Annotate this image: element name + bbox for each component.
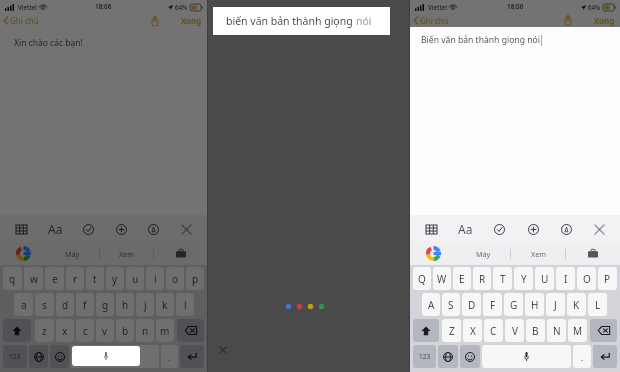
button[interactable]: Aa	[454, 218, 476, 240]
button[interactable]: V	[505, 319, 524, 342]
button[interactable]: Bảng	[421, 219, 441, 239]
button[interactable]: j	[136, 293, 154, 316]
staticText: Y	[521, 272, 527, 286]
button[interactable]: Thêm	[111, 219, 131, 239]
button[interactable]: 123	[413, 345, 436, 368]
button[interactable]: s	[35, 293, 54, 316]
button[interactable]: E	[453, 267, 471, 290]
button[interactable]: m	[156, 319, 174, 342]
button[interactable]: Dấu cách	[482, 345, 571, 368]
button[interactable]: a	[14, 293, 33, 316]
button[interactable]: U	[535, 267, 554, 290]
button[interactable]: .	[573, 345, 591, 368]
button[interactable]: K	[567, 293, 586, 316]
button[interactable]: C	[484, 319, 503, 342]
button[interactable]: biến văn bản thành giọng	[213, 7, 390, 35]
button[interactable]: z	[35, 319, 54, 342]
button[interactable]: Đóng bàn phím	[589, 219, 609, 239]
button[interactable]: T	[493, 267, 512, 290]
button[interactable]: Đóng bàn phím	[176, 219, 196, 239]
button[interactable]: G	[504, 293, 523, 316]
button[interactable]: Xong	[592, 15, 617, 26]
button[interactable]: Máy	[46, 242, 99, 265]
button[interactable]: O	[577, 267, 596, 290]
button[interactable]: F	[483, 293, 502, 316]
button[interactable]: L	[588, 293, 607, 316]
button[interactable]: M	[568, 319, 587, 342]
button[interactable]: l	[176, 293, 194, 316]
button[interactable]: Xem	[511, 242, 565, 265]
button[interactable]: Xong	[179, 15, 204, 26]
button[interactable]: Cặp	[154, 242, 207, 265]
button[interactable]: Đánh dấu	[143, 219, 163, 239]
button[interactable]: Ghi chú	[413, 15, 449, 26]
button[interactable]: N	[547, 319, 566, 342]
button[interactable]: Shift	[3, 319, 31, 342]
staticText: i	[154, 272, 157, 286]
button[interactable]: Xuống dòng	[593, 345, 617, 368]
button[interactable]: h	[116, 293, 134, 316]
button[interactable]: x	[56, 319, 74, 342]
button[interactable]: e	[45, 267, 64, 290]
button[interactable]: Shift	[413, 319, 439, 342]
button[interactable]: Máy	[456, 242, 510, 265]
button[interactable]: S	[442, 293, 460, 316]
button[interactable]: Google	[0, 242, 46, 265]
button[interactable]: D	[462, 293, 481, 316]
button[interactable]: i	[146, 267, 164, 290]
button[interactable]: u	[126, 267, 144, 290]
button[interactable]: Xem	[100, 242, 153, 265]
button[interactable]: Z	[442, 319, 461, 342]
button[interactable]: Dấu cách	[71, 345, 159, 368]
button[interactable]: I	[556, 267, 575, 290]
button[interactable]: Xuống dòng	[180, 345, 204, 368]
button[interactable]: Biểu tượng cảm xúc	[460, 345, 480, 368]
button[interactable]: Q	[413, 267, 431, 290]
button[interactable]: Thêm	[523, 219, 543, 239]
button[interactable]: Ghi chú	[3, 15, 39, 26]
button[interactable]: Danh sách kiểm	[489, 219, 509, 239]
button[interactable]: Google	[410, 242, 456, 265]
staticText: t	[93, 272, 97, 286]
button[interactable]: Aa	[44, 218, 66, 240]
button[interactable]: Y	[514, 267, 533, 290]
button[interactable]: p	[186, 267, 204, 290]
button[interactable]: Danh sách kiểm	[78, 219, 98, 239]
button[interactable]: H	[525, 293, 544, 316]
button[interactable]: r	[66, 267, 84, 290]
button[interactable]: k	[156, 293, 174, 316]
button[interactable]: 123	[3, 345, 27, 368]
button[interactable]: Đánh dấu	[556, 219, 576, 239]
button[interactable]: X	[463, 319, 482, 342]
button[interactable]: A	[422, 293, 440, 316]
button[interactable]: n	[136, 319, 154, 342]
button[interactable]: Xóa	[590, 319, 617, 342]
button[interactable]: o	[166, 267, 184, 290]
button[interactable]: Đổi bàn phím	[29, 345, 48, 368]
button[interactable]: v	[96, 319, 114, 342]
button[interactable]: Bảng	[11, 219, 31, 239]
button[interactable]: Chia sẻ	[147, 13, 163, 28]
button[interactable]: f	[76, 293, 94, 316]
button[interactable]: R	[473, 267, 491, 290]
button[interactable]: y	[106, 267, 124, 290]
button[interactable]: g	[96, 293, 114, 316]
button[interactable]: .	[161, 345, 178, 368]
button[interactable]: q	[3, 267, 22, 290]
button[interactable]: W	[433, 267, 451, 290]
button[interactable]: Đổi bàn phím	[438, 345, 458, 368]
button[interactable]: J	[546, 293, 565, 316]
button[interactable]: P	[598, 267, 617, 290]
button[interactable]: d	[56, 293, 74, 316]
button[interactable]: Cặp	[566, 242, 620, 265]
button[interactable]: t	[86, 267, 104, 290]
button[interactable]: Xóa	[177, 319, 204, 342]
button[interactable]: Đóng	[217, 344, 229, 356]
button[interactable]: B	[526, 319, 545, 342]
button[interactable]: w	[24, 267, 43, 290]
button[interactable]: c	[76, 319, 94, 342]
button[interactable]: Chia sẻ	[560, 13, 576, 27]
button[interactable]: b	[116, 319, 134, 342]
button[interactable]: Biểu tượng cảm xúc	[50, 345, 69, 368]
button[interactable]: Dấu cách	[72, 346, 140, 366]
